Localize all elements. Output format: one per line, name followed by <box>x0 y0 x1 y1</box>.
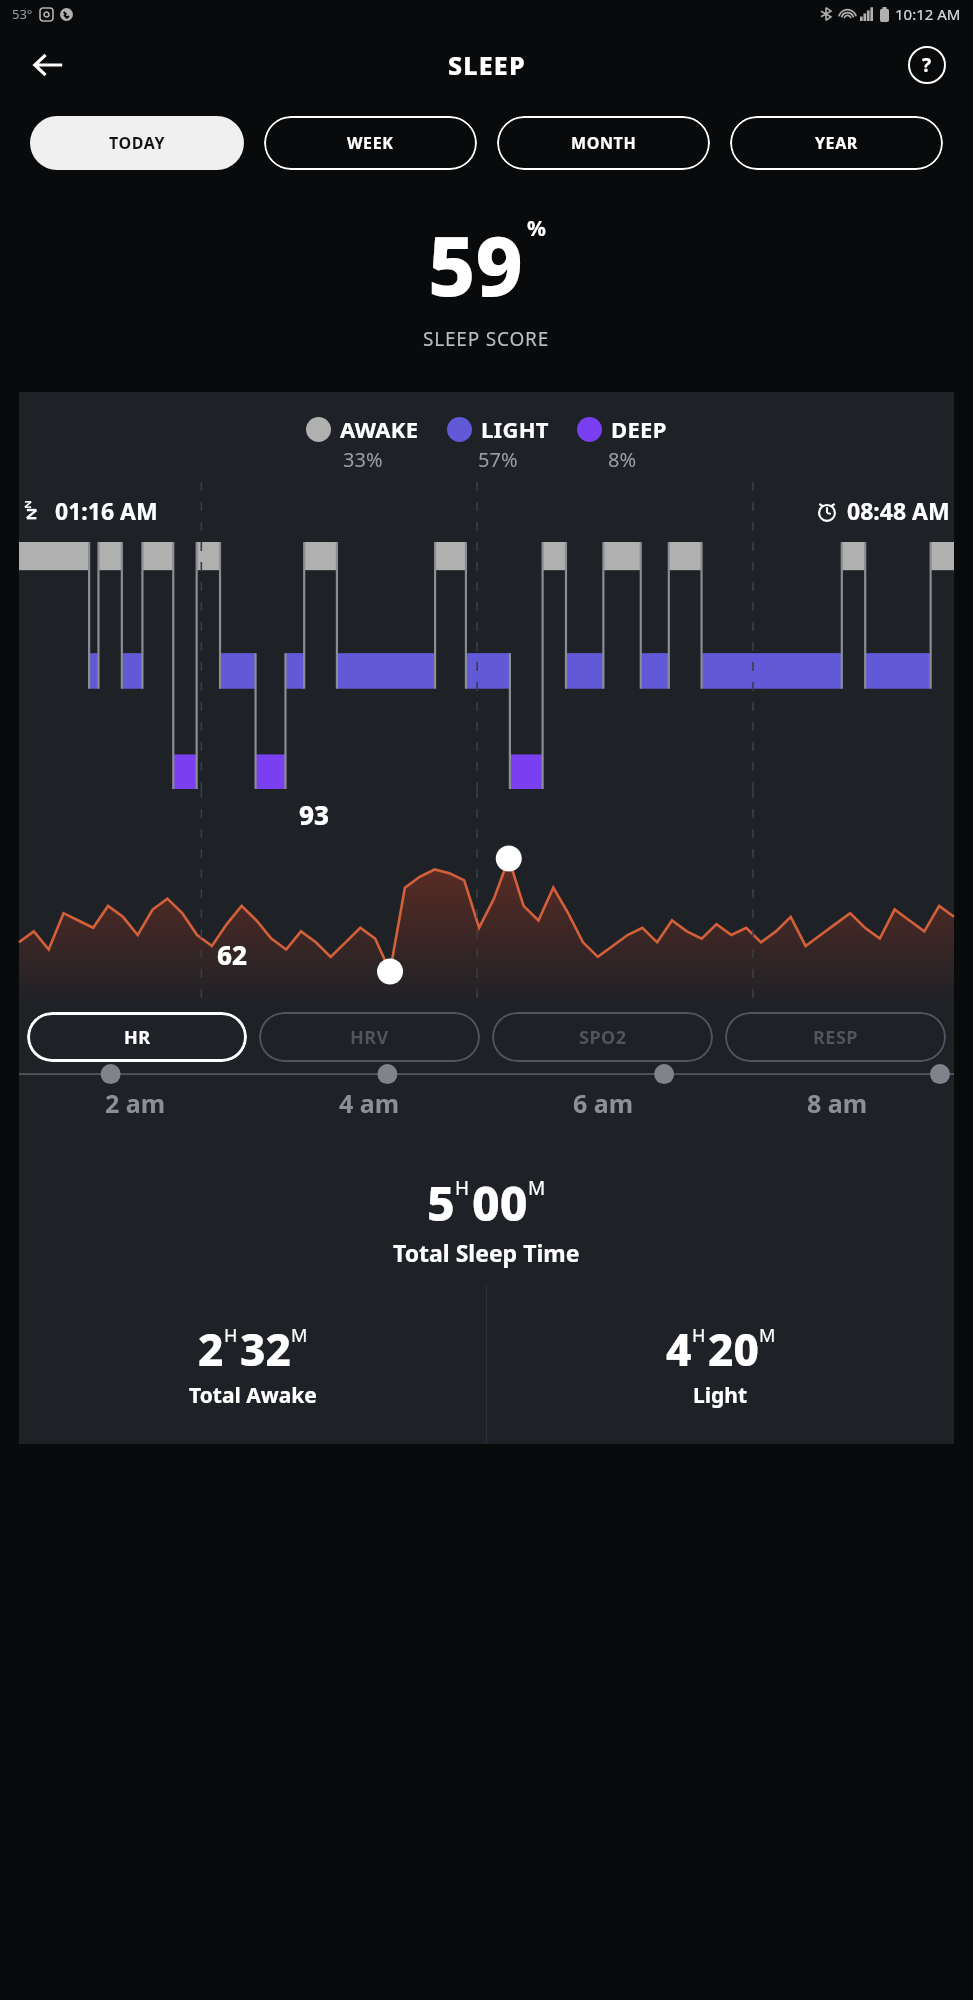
staticText: WEEK <box>347 132 394 154</box>
staticText: H <box>224 1323 238 1348</box>
staticText: 93 <box>299 797 330 832</box>
staticText: 2 am <box>105 1086 166 1120</box>
button[interactable]: 4 <box>487 1284 954 1444</box>
button[interactable]: RESP <box>725 1012 946 1062</box>
staticText: 20 <box>708 1319 759 1379</box>
staticText: 32 <box>240 1319 291 1379</box>
button[interactable]: TODAY <box>30 116 244 170</box>
staticText: ? <box>922 52 932 78</box>
staticText: 4 am <box>339 1086 400 1120</box>
staticText: HR <box>124 1025 151 1050</box>
staticText: 4 <box>666 1319 692 1379</box>
button[interactable]: Back <box>24 41 72 89</box>
staticText: 01:16 AM <box>55 495 158 526</box>
staticText: TODAY <box>109 132 166 154</box>
staticText: 2 <box>198 1319 224 1379</box>
button[interactable]: MONTH <box>497 116 710 170</box>
staticText: YEAR <box>815 132 858 154</box>
staticText: M <box>528 1175 546 1201</box>
button[interactable]: HR <box>27 1012 247 1062</box>
staticText: 8% <box>608 446 637 473</box>
button[interactable]: HRV <box>259 1012 480 1062</box>
staticText: 6 am <box>573 1086 634 1120</box>
staticText: 08:48 AM <box>847 495 950 526</box>
staticText: LIGHT <box>481 414 549 444</box>
button[interactable]: WEEK <box>264 116 477 170</box>
staticText: 33% <box>343 446 383 473</box>
staticText: % <box>527 214 546 243</box>
staticText: 62 <box>217 937 248 972</box>
staticText: RESP <box>813 1025 858 1050</box>
staticText: H <box>455 1175 470 1201</box>
button[interactable]: SPO2 <box>492 1012 713 1062</box>
staticText: 5 <box>427 1170 455 1235</box>
staticText: Light <box>693 1381 748 1410</box>
staticText: H <box>692 1323 706 1348</box>
staticText: 57% <box>478 446 518 473</box>
staticText: 8 am <box>807 1086 868 1120</box>
button[interactable]: 2 <box>19 1284 486 1444</box>
staticText: M <box>759 1323 776 1348</box>
staticText: MONTH <box>571 132 637 154</box>
staticText: SLEEP SCORE <box>423 326 550 352</box>
staticText: SLEEP <box>448 48 526 82</box>
staticText: HRV <box>350 1025 389 1050</box>
staticText: Total Sleep Time <box>393 1237 580 1268</box>
staticText: AWAKE <box>340 414 419 444</box>
staticText: SPO2 <box>579 1025 627 1050</box>
button[interactable]: Help <box>905 43 949 87</box>
staticText: DEEP <box>611 414 667 444</box>
staticText: 00 <box>472 1170 528 1235</box>
staticText: 53° <box>12 5 33 23</box>
staticText: 10:12 AM <box>895 4 961 24</box>
button[interactable]: YEAR <box>730 116 943 170</box>
staticText: M <box>291 1323 308 1348</box>
staticText: 59 <box>428 208 523 320</box>
staticText: Total Awake <box>189 1381 317 1410</box>
